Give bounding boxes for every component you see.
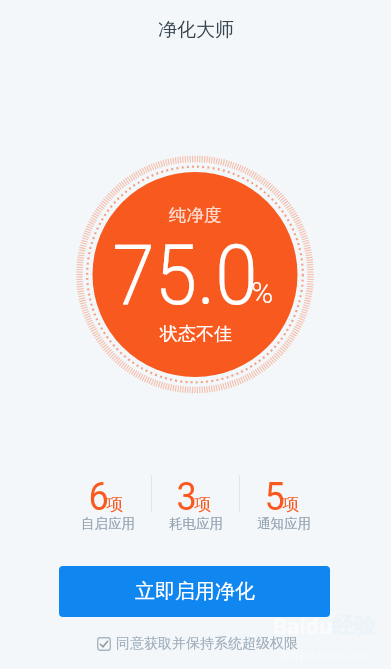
- staticText: 3: [177, 475, 197, 520]
- staticText: 项: [282, 494, 299, 515]
- staticText: %: [251, 275, 274, 310]
- staticText: 净化大师: [158, 18, 234, 42]
- button[interactable]: 同意获取并保持系统超级权限: [97, 635, 298, 653]
- staticText: 状态不佳: [160, 323, 232, 346]
- staticText: 立即启用净化: [135, 579, 255, 604]
- staticText: 5: [264, 475, 285, 520]
- staticText: 自启应用: [81, 515, 135, 532]
- button[interactable]: 立即启用净化: [59, 566, 330, 617]
- staticText: Baidu: [273, 612, 333, 641]
- staticText: 通知应用: [257, 515, 311, 532]
- staticText: 同意获取并保持系统超级权限: [116, 635, 298, 653]
- staticText: 耗电应用: [169, 515, 223, 532]
- staticText: jingyan.baidu.com: [281, 648, 368, 662]
- staticText: 纯净度: [169, 204, 222, 226]
- staticText: 项: [194, 494, 211, 515]
- staticText: 75.0: [112, 227, 258, 324]
- staticText: 经验: [332, 612, 376, 640]
- staticText: 项: [106, 494, 123, 515]
- staticText: 6: [89, 475, 109, 520]
